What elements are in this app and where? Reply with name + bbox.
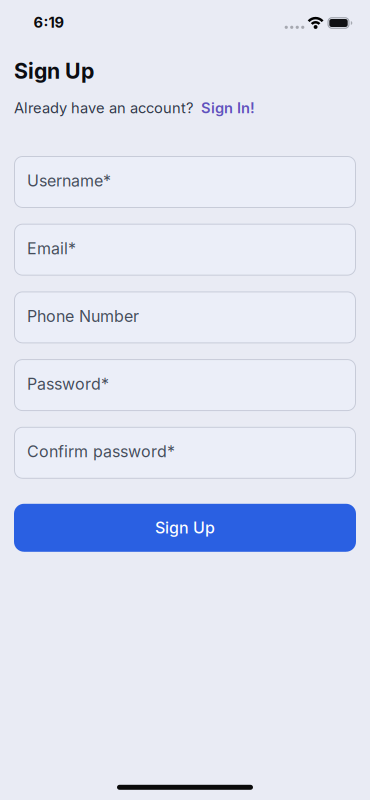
staticText: Sign In! xyxy=(201,99,255,116)
staticText: Username* xyxy=(27,171,111,190)
staticText: Sign Up xyxy=(155,518,215,537)
staticText: Phone Number xyxy=(27,307,139,326)
staticText: Confirm password* xyxy=(27,442,175,461)
staticText: Sign Up xyxy=(14,58,94,84)
staticText: Password* xyxy=(27,374,109,393)
staticText: Already have an account? xyxy=(14,99,193,116)
staticText: 6:19 xyxy=(33,14,64,31)
staticText: Email* xyxy=(27,239,76,258)
